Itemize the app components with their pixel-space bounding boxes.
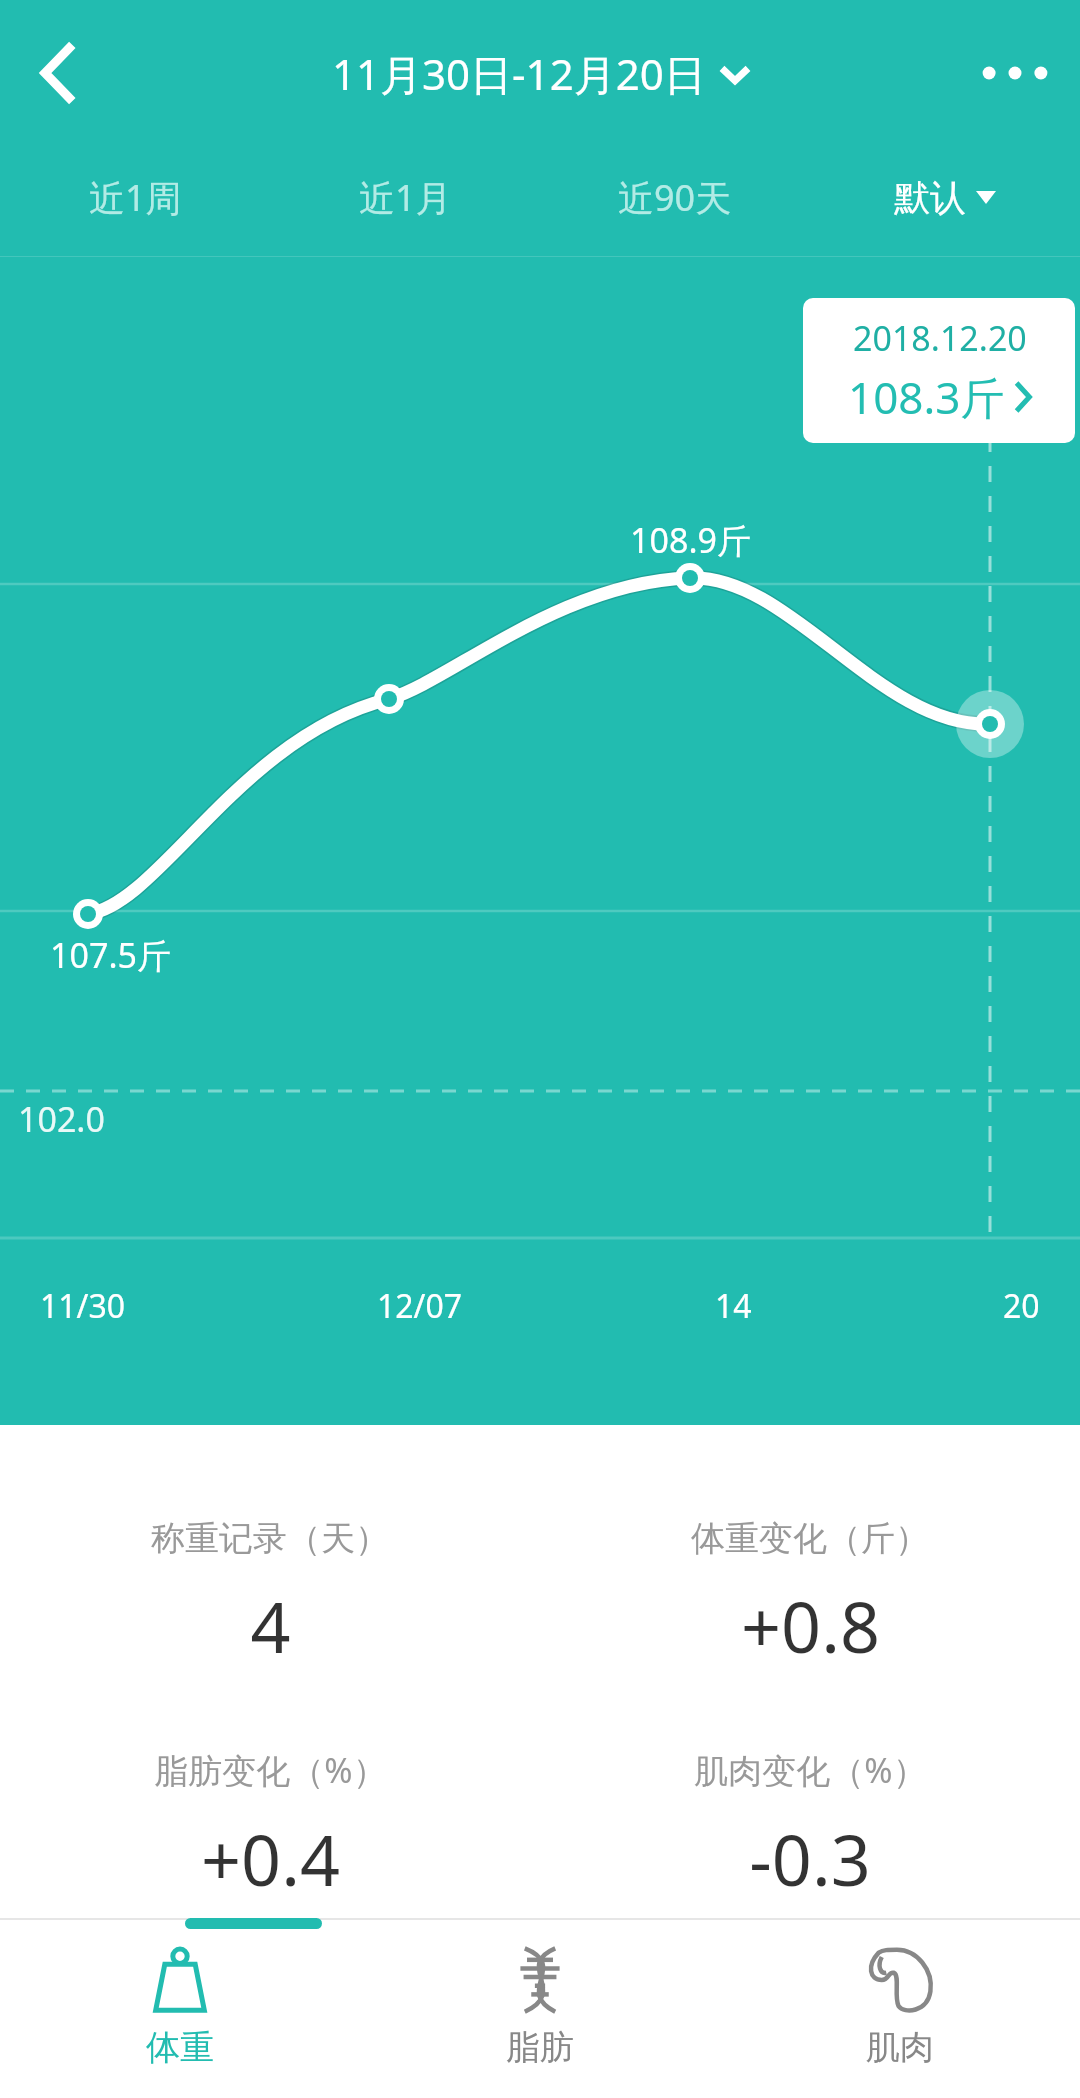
button[interactable]: 称重记录（天） (0, 1517, 540, 1673)
button[interactable]: 体重变化（斤） (540, 1517, 1080, 1673)
staticText: 脂肪变化（%） (154, 1747, 387, 1793)
staticText: 脂肪 (506, 2026, 574, 2069)
button[interactable]: 近1月 (270, 138, 540, 256)
button[interactable]: 肌肉变化（%） (540, 1747, 1080, 1906)
staticText: +0.8 (741, 1578, 880, 1673)
staticText: 肌肉变化（%） (694, 1747, 927, 1793)
button[interactable]: Back (0, 8, 120, 138)
button[interactable]: 11月30日-12月20日 (332, 45, 748, 102)
staticText: 108.3斤 (848, 367, 1005, 427)
staticText: +0.4 (201, 1811, 340, 1906)
button[interactable]: 2018.12.20 (803, 298, 1075, 443)
button[interactable]: 近90天 (540, 138, 810, 256)
staticText: 默认 (894, 175, 966, 220)
staticText: 体重变化（斤） (691, 1517, 929, 1560)
button[interactable]: 近1周 (0, 138, 270, 256)
staticText: 108.9斤 (630, 517, 751, 563)
staticText: 近1月 (359, 173, 452, 222)
staticText: 近90天 (618, 173, 732, 222)
staticText: 称重记录（天） (151, 1517, 389, 1560)
staticText: 11月30日-12月20日 (332, 45, 706, 102)
staticText: 107.5斤 (50, 932, 171, 978)
staticText: 近1周 (89, 173, 182, 222)
staticText: 102.0 (18, 1096, 105, 1142)
staticText: 2018.12.20 (853, 315, 1027, 361)
staticText: 20 (1003, 1284, 1040, 1328)
button[interactable]: 脂肪变化（%） (0, 1747, 540, 1906)
staticText: -0.3 (749, 1811, 871, 1906)
button[interactable]: 肌肉 (720, 1918, 1080, 2098)
button[interactable]: More options (950, 8, 1080, 138)
button[interactable]: 脂肪 (360, 1918, 720, 2098)
button[interactable]: 体重 (0, 1918, 360, 2098)
button[interactable]: 默认 (810, 138, 1080, 256)
staticText: 体重 (146, 2026, 214, 2069)
staticText: 11/30 (40, 1284, 126, 1328)
staticText: 4 (250, 1578, 291, 1673)
staticText: 肌肉 (866, 2026, 934, 2069)
staticText: 12/07 (377, 1284, 463, 1328)
staticText: 14 (715, 1284, 752, 1328)
